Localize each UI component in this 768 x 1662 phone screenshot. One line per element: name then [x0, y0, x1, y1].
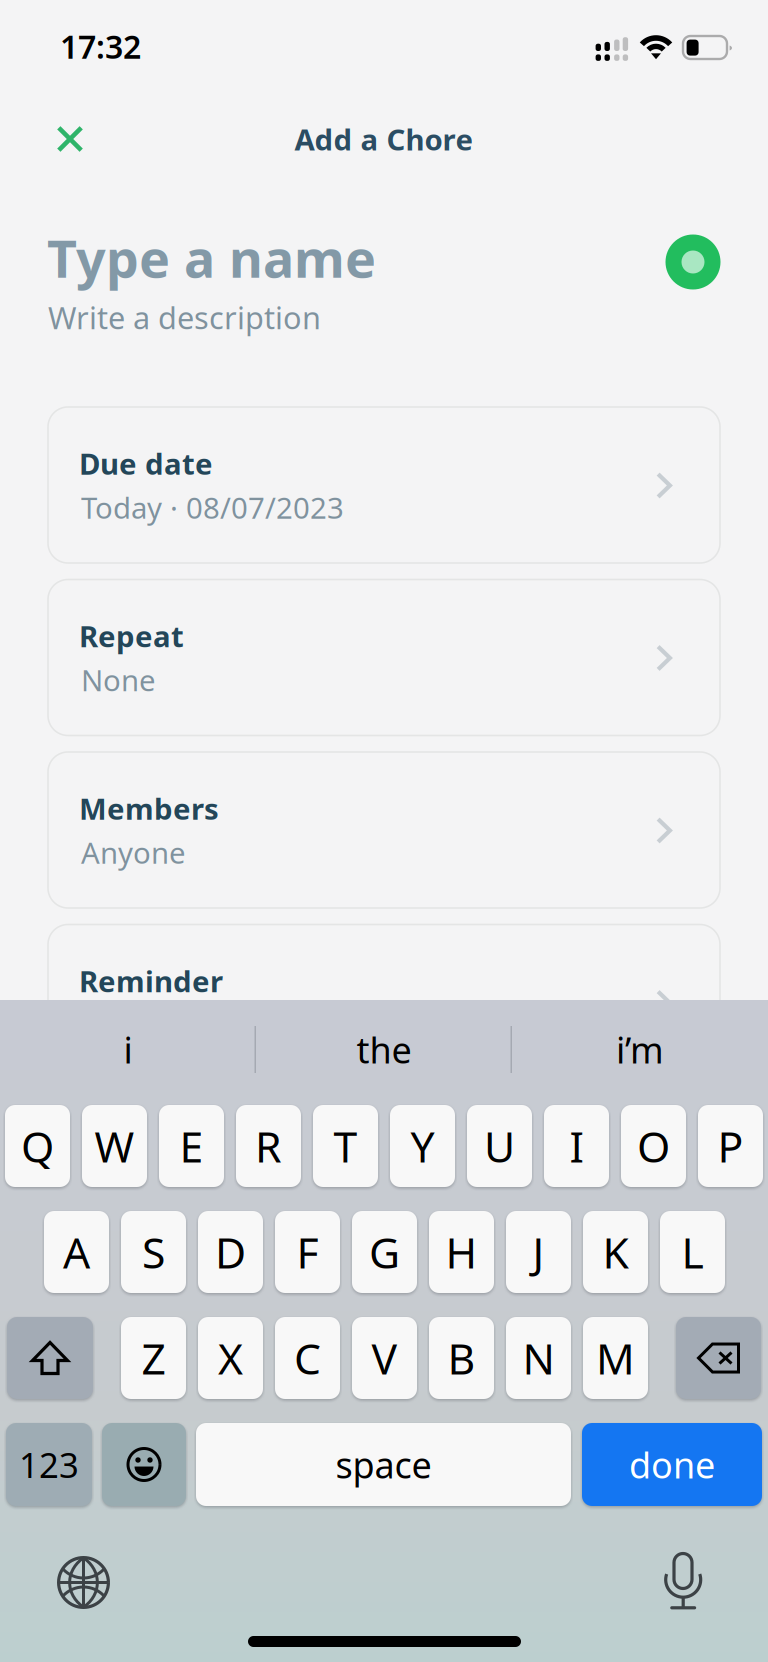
staticText: U: [484, 1118, 515, 1174]
button[interactable]: i: [0, 1000, 256, 1095]
staticText: Members: [79, 789, 219, 828]
button[interactable]: W: [82, 1105, 147, 1187]
staticText: E: [179, 1118, 203, 1174]
staticText: O: [637, 1118, 670, 1174]
button[interactable]: done: [582, 1423, 762, 1506]
button[interactable]: Due date: [48, 407, 720, 563]
staticText: Anyone: [81, 833, 186, 872]
staticText: P: [717, 1118, 743, 1174]
button[interactable]: K: [583, 1211, 648, 1293]
staticText: Reminder: [79, 961, 223, 1000]
staticText: Due date: [79, 444, 213, 483]
staticText: Repeat: [79, 616, 184, 655]
button[interactable]: A: [44, 1211, 109, 1293]
button[interactable]: U: [467, 1105, 532, 1187]
button[interactable]: E: [159, 1105, 224, 1187]
staticText: 123: [19, 1441, 79, 1487]
button[interactable]: X: [198, 1317, 263, 1399]
button[interactable]: H: [429, 1211, 494, 1293]
button[interactable]: Q: [5, 1105, 70, 1187]
staticText: i’m: [616, 1026, 664, 1073]
button[interactable]: 123: [6, 1423, 92, 1506]
button[interactable]: I: [544, 1105, 609, 1187]
staticText: the: [356, 1026, 411, 1073]
button[interactable]: Next keyboard: [48, 1547, 118, 1617]
staticText: C: [294, 1330, 321, 1386]
staticText: i: [123, 1026, 132, 1073]
button[interactable]: space: [196, 1423, 571, 1506]
staticText: T: [333, 1118, 357, 1174]
staticText: B: [447, 1330, 475, 1386]
button[interactable]: T: [313, 1105, 378, 1187]
staticText: A: [63, 1224, 90, 1280]
button[interactable]: Reminder: [48, 924, 720, 1080]
button[interactable]: N: [506, 1317, 571, 1399]
button[interactable]: S: [121, 1211, 186, 1293]
staticText: Type a name: [47, 223, 376, 292]
staticText: None: [81, 660, 156, 699]
staticText: I: [569, 1118, 583, 1174]
staticText: None: [81, 1005, 156, 1044]
staticText: X: [218, 1330, 243, 1386]
button[interactable]: D: [198, 1211, 263, 1293]
staticText: done: [629, 1441, 715, 1488]
staticText: J: [532, 1224, 544, 1280]
staticText: W: [94, 1118, 134, 1174]
staticText: V: [371, 1330, 397, 1386]
button[interactable]: i’m: [512, 1000, 768, 1095]
staticText: Q: [21, 1118, 54, 1174]
button[interactable]: G: [352, 1211, 417, 1293]
button[interactable]: the: [256, 1000, 512, 1095]
button[interactable]: Emoji: [102, 1423, 186, 1506]
button[interactable]: Members: [48, 752, 720, 908]
staticText: L: [681, 1224, 703, 1280]
staticText: G: [369, 1224, 400, 1280]
staticText: 17:32: [60, 25, 141, 67]
staticText: Y: [410, 1118, 434, 1174]
staticText: F: [296, 1224, 318, 1280]
button[interactable]: Y: [390, 1105, 455, 1187]
button[interactable]: L: [660, 1211, 725, 1293]
staticText: R: [255, 1118, 282, 1174]
button[interactable]: F: [275, 1211, 340, 1293]
staticText: Write a description: [48, 297, 321, 338]
button[interactable]: Shift: [7, 1317, 93, 1399]
button[interactable]: P: [698, 1105, 763, 1187]
staticText: Add a Chore: [294, 119, 473, 158]
button[interactable]: C: [275, 1317, 340, 1399]
button[interactable]: Dictate: [655, 1546, 711, 1616]
button[interactable]: M: [583, 1317, 648, 1399]
staticText: K: [602, 1224, 628, 1280]
button[interactable]: V: [352, 1317, 417, 1399]
staticText: M: [596, 1330, 635, 1386]
button[interactable]: B: [429, 1317, 494, 1399]
staticText: D: [215, 1224, 246, 1280]
staticText: S: [142, 1224, 165, 1280]
button[interactable]: R: [236, 1105, 301, 1187]
button[interactable]: Delete: [676, 1317, 761, 1399]
button[interactable]: Close: [37, 106, 103, 172]
button[interactable]: Chore colour: [662, 231, 724, 293]
staticText: H: [445, 1224, 477, 1280]
button[interactable]: J: [506, 1211, 571, 1293]
staticText: space: [335, 1441, 431, 1488]
staticText: Z: [141, 1330, 165, 1386]
button[interactable]: Z: [121, 1317, 186, 1399]
button[interactable]: O: [621, 1105, 686, 1187]
staticText: Today · 08/07/2023: [81, 488, 344, 527]
button[interactable]: Repeat: [48, 579, 720, 735]
staticText: N: [522, 1330, 554, 1386]
